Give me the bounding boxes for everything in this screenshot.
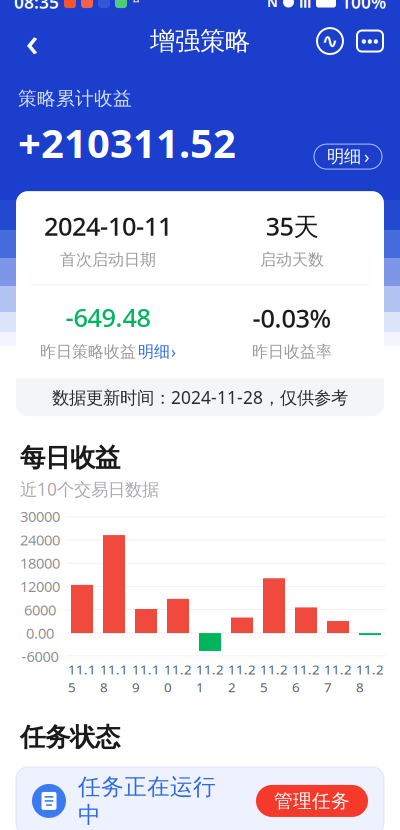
staticText: 11.25 xyxy=(260,660,288,696)
staticText: ıll xyxy=(299,0,311,12)
staticText: 11.18 xyxy=(100,660,128,696)
staticText: 11.28 xyxy=(356,660,384,696)
staticText: 数据更新时间：2024-11-28，仅供参考 xyxy=(52,386,348,409)
staticText: 11.26 xyxy=(292,660,320,696)
staticText: 首次启动日期 xyxy=(60,250,156,269)
staticText: 11.19 xyxy=(132,660,160,696)
staticText: ∿ xyxy=(321,30,338,52)
staticText: 11.27 xyxy=(324,660,352,696)
staticText: 11.15 xyxy=(68,660,96,696)
staticText: 增强策略 xyxy=(150,25,250,57)
staticText: 近10个交易日数据 xyxy=(20,477,159,500)
staticText: -6000 xyxy=(21,647,58,666)
staticText: 管理任务 xyxy=(274,789,350,812)
staticText: 08:35 xyxy=(14,0,59,13)
staticText: ••• xyxy=(361,31,379,51)
staticText: -649.48 xyxy=(65,300,150,334)
button[interactable]: 策略诊断 xyxy=(310,19,350,63)
staticText: 任务状态 xyxy=(20,722,120,753)
staticText: 明细 xyxy=(138,342,170,361)
button[interactable]: 返回 xyxy=(10,19,54,63)
staticText: 每日收益 xyxy=(20,442,120,473)
staticText: 11.20 xyxy=(164,660,192,696)
button[interactable]: 明细 xyxy=(314,144,382,169)
staticText: -0.03% xyxy=(252,301,331,335)
staticText: +210311.52 xyxy=(18,116,236,169)
staticText: ‹ xyxy=(25,14,38,68)
staticText: 昨日收益率 xyxy=(252,342,332,361)
staticText: 6000 xyxy=(24,600,56,619)
button[interactable]: 管理任务 xyxy=(256,785,368,817)
staticText: 任务正在运行中 xyxy=(78,773,216,829)
staticText: 启动天数 xyxy=(260,250,324,269)
button[interactable]: 明细 xyxy=(138,341,176,362)
staticText: 11.22 xyxy=(228,660,256,696)
staticText: 12000 xyxy=(20,577,60,596)
staticText: › xyxy=(171,341,176,362)
staticText: 100% xyxy=(341,0,386,13)
staticText: 24000 xyxy=(20,530,60,549)
staticText: ᐞ xyxy=(132,0,140,10)
staticText: 0.00 xyxy=(26,623,54,643)
staticText: 30000 xyxy=(20,507,60,526)
staticText: 18000 xyxy=(20,553,60,573)
button[interactable]: 客服消息 xyxy=(350,19,390,63)
staticText: 策略累计收益 xyxy=(18,87,132,110)
staticText: › xyxy=(364,145,369,168)
staticText: 11.21 xyxy=(196,660,224,696)
staticText: 昨日策略收益 xyxy=(40,342,136,361)
staticText: 35天 xyxy=(265,209,318,243)
staticText: N xyxy=(267,0,278,11)
staticText: 明细 xyxy=(327,146,361,167)
staticText: 2024-10-11 xyxy=(44,209,172,243)
